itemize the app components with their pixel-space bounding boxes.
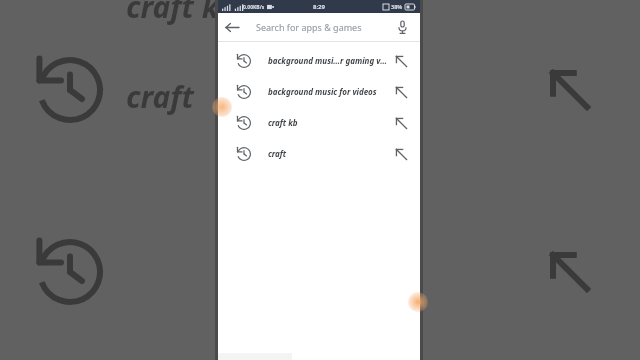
- staticText: 8:29: [313, 3, 325, 11]
- button[interactable]: craft: [218, 138, 420, 169]
- staticText: craft kb: [126, 0, 237, 27]
- button[interactable]: background musi…r gaming videos: [218, 45, 420, 76]
- staticText: 0.00KB/s: [243, 4, 265, 11]
- staticText: background musi…r gaming videos: [268, 55, 388, 66]
- staticText: craft kb: [268, 117, 388, 128]
- button[interactable]: Insert suggestion: [388, 110, 414, 136]
- staticText: background music for videos: [268, 86, 388, 97]
- staticText: 38%: [391, 3, 403, 10]
- button[interactable]: craft kb: [218, 107, 420, 138]
- button[interactable]: Search by voice: [388, 13, 416, 41]
- button[interactable]: Navigate up: [218, 13, 246, 41]
- staticText: Search for apps & games: [256, 21, 362, 33]
- button[interactable]: background music for videos: [218, 76, 420, 107]
- button[interactable]: Search for apps & games: [246, 13, 388, 41]
- button[interactable]: Insert suggestion: [388, 48, 414, 74]
- staticText: craft: [126, 76, 194, 117]
- staticText: craft: [268, 148, 388, 159]
- button[interactable]: Insert suggestion: [388, 141, 414, 167]
- button[interactable]: Insert suggestion: [388, 79, 414, 105]
